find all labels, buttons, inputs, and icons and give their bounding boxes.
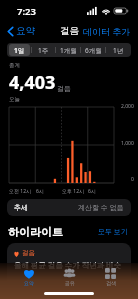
button[interactable]: 데이터 추가 xyxy=(80,23,134,39)
staticText: 6개월 xyxy=(85,46,102,55)
staticText: 걸음 xyxy=(57,84,71,93)
staticText: 걸음 xyxy=(60,25,79,37)
button[interactable]: 1일 xyxy=(9,44,30,56)
staticText: 2,000 xyxy=(121,103,134,110)
staticText: 검색 xyxy=(106,280,116,286)
button[interactable]: 걸음 xyxy=(7,243,131,299)
staticText: 1일 xyxy=(14,46,25,55)
staticText: 0 xyxy=(131,176,134,183)
staticText: 걸음/일 xyxy=(54,281,75,289)
staticText: 총계 xyxy=(9,62,20,69)
staticText: 1주 xyxy=(38,46,49,55)
staticText: 오늘 xyxy=(9,96,20,103)
staticText: 6시 xyxy=(36,188,44,195)
staticText: 공유 xyxy=(65,280,75,286)
staticText: 1년 xyxy=(113,46,124,55)
staticText: 4,403 xyxy=(9,70,56,95)
staticText: 하이라이트 xyxy=(8,225,63,239)
staticText: 7:23 xyxy=(17,5,36,18)
staticText: 오후 12시 xyxy=(62,188,85,195)
button[interactable]: 1주 xyxy=(33,44,54,56)
button[interactable]: 1개월 xyxy=(57,44,79,56)
button[interactable]: 추세 xyxy=(7,199,131,216)
staticText: 6시 xyxy=(88,188,96,195)
button[interactable]: 1년 xyxy=(107,44,129,56)
staticText: 1,000 xyxy=(121,140,134,147)
staticText: 요약 xyxy=(16,25,35,37)
staticText: 모두 보기 xyxy=(98,227,128,237)
staticText: 요약 xyxy=(24,280,34,286)
button[interactable]: 6개월 xyxy=(82,44,104,56)
staticText: 걸음 xyxy=(22,249,35,257)
staticText: 올해 평균 걸음 수가 작년과 비슷합니다. xyxy=(14,260,124,270)
staticText: 추세 xyxy=(14,203,28,212)
button[interactable]: 검색 xyxy=(99,267,122,287)
staticText: 오전 12시 xyxy=(9,188,32,195)
button[interactable]: 요약 xyxy=(17,267,41,287)
button[interactable]: 모두 보기 xyxy=(96,225,130,239)
staticText: 계산할 수 없음 xyxy=(78,203,124,213)
staticText: 데이터 추가 xyxy=(83,25,131,37)
button[interactable]: 요약 xyxy=(5,23,37,39)
staticText: 1개월 xyxy=(60,46,77,55)
staticText: 8,402 xyxy=(14,274,53,291)
button[interactable]: 공유 xyxy=(57,267,82,287)
